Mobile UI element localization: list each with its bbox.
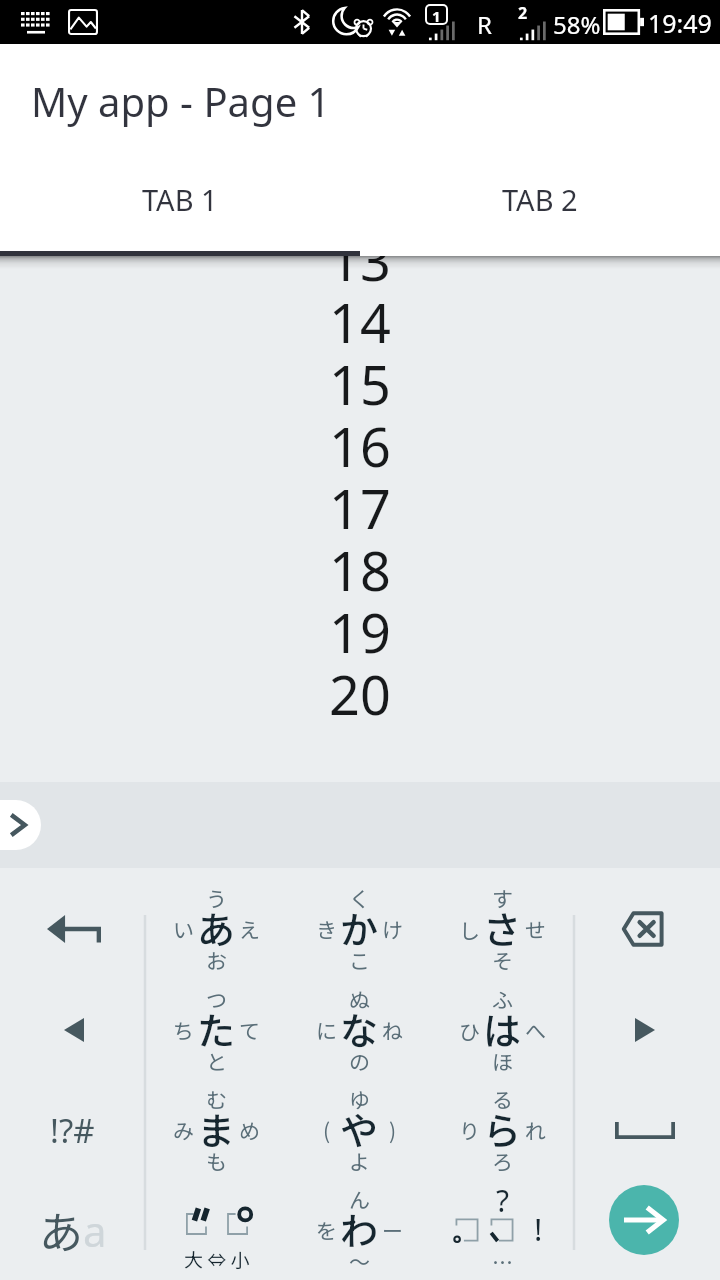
staticText: 15 [329,347,391,409]
staticText: 14 [329,285,391,347]
button[interactable]: !?# [0,1080,145,1180]
staticText: お [206,945,227,975]
staticText: ー [382,1215,403,1245]
button[interactable]: あ [0,1180,145,1280]
staticText: 16 [329,409,391,471]
button[interactable]: TAB 2 [360,158,720,256]
staticText: 2 [518,2,528,24]
staticText: う [206,883,227,913]
button[interactable]: Space [574,1080,720,1180]
staticText: ぬ [349,984,370,1014]
staticText: に [316,1015,337,1045]
staticText: も [206,1146,227,1176]
staticText: ひ [459,1015,480,1045]
staticText: み [173,1115,194,1145]
button[interactable]: 18 [0,533,720,595]
staticText: と [206,1046,227,1076]
button[interactable]: Undo [0,879,145,979]
staticText: き [316,914,337,944]
button[interactable]: Punctuation [431,1180,574,1280]
staticText: け [382,914,403,944]
button[interactable]: Backspace [574,879,720,979]
button[interactable]: か [288,879,431,979]
button[interactable]: あ [145,879,288,979]
button[interactable]: 16 [0,409,720,471]
button[interactable]: Dakuten / small kana [145,1180,288,1280]
button[interactable]: さ [431,879,574,979]
button[interactable]: 20 [0,657,720,719]
staticText: り [459,1115,480,1145]
staticText: な [340,1001,379,1056]
staticText: 58% [553,8,601,41]
staticText: そ [492,945,513,975]
button[interactable]: Enter [609,1185,679,1255]
staticText: R [477,8,492,41]
staticText: 18 [329,533,391,595]
staticText: よ [349,1146,370,1176]
staticText: 20 [329,657,391,719]
staticText: く [349,883,370,913]
staticText: れ [525,1115,546,1145]
button[interactable]: Cursor right [574,980,720,1080]
button[interactable]: Expand candidates [0,800,41,850]
staticText: ふ [492,984,513,1014]
staticText: か [340,900,379,955]
staticText: ! [534,1208,543,1250]
staticText: … [492,1247,513,1277]
button[interactable]: Cursor left [0,980,145,1080]
staticText: My app - Page 1 [31,74,331,128]
staticText: TAB 1 [142,180,218,219]
button[interactable]: や [288,1080,431,1180]
staticText: ね [382,1015,403,1045]
button[interactable]: な [288,980,431,1080]
button[interactable]: TAB 1 [0,158,360,256]
staticText: こ [349,945,370,975]
staticText: ん [349,1184,370,1214]
staticText: 大 ⇔ 小 [184,1245,250,1273]
staticText: ) [389,1115,397,1145]
button[interactable]: は [431,980,574,1080]
staticText: や [340,1101,379,1156]
staticText: 19 [329,595,391,657]
staticText: め [239,1115,260,1145]
staticText: の [349,1046,370,1076]
staticText: へ [525,1015,546,1045]
staticText: し [459,914,480,944]
button[interactable]: た [145,980,288,1080]
staticText: て [239,1015,260,1045]
staticText: 13 [329,256,391,285]
staticText: 19:49 [648,6,712,40]
staticText: す [492,883,513,913]
staticText: は [483,1001,522,1056]
staticText: を [316,1215,337,1245]
button[interactable]: 17 [0,471,720,533]
staticText: ろ [492,1146,513,1176]
button[interactable]: 15 [0,347,720,409]
staticText: ま [197,1101,236,1156]
staticText: る [492,1084,513,1114]
staticText: !?# [50,1108,95,1153]
staticText: せ [525,914,546,944]
staticText: つ [206,984,227,1014]
button[interactable]: ま [145,1080,288,1180]
staticText: ほ [492,1046,513,1076]
staticText: 17 [329,471,391,533]
staticText: さ [483,900,522,955]
button[interactable]: 13 [0,256,720,285]
staticText: 〜 [349,1246,370,1276]
staticText: た [197,1001,236,1056]
button[interactable]: わ [288,1180,431,1280]
button[interactable]: ら [431,1080,574,1180]
staticText: む [206,1084,227,1114]
staticText: あ [39,1198,83,1262]
staticText: あ [197,900,236,955]
staticText: え [239,914,260,944]
staticText: わ [340,1201,379,1256]
button[interactable]: 19 [0,595,720,657]
staticText: ゆ [349,1084,370,1114]
staticText: a [83,1202,107,1259]
staticText: い [173,914,194,944]
staticText: ら [483,1101,522,1156]
button[interactable]: 14 [0,285,720,347]
staticText: ? [496,1180,510,1221]
